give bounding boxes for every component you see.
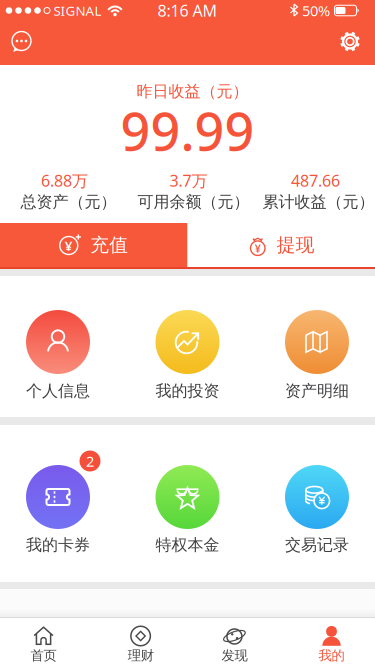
button[interactable]: 首页: [0, 618, 90, 667]
staticText: 个人信息: [26, 381, 90, 401]
button[interactable]: 我的卡券: [0, 425, 116, 582]
staticText: 提现: [277, 233, 315, 256]
button[interactable]: 特权本金: [129, 425, 245, 582]
button[interactable]: ¥: [187, 223, 375, 267]
staticText: 我的: [318, 647, 344, 664]
staticText: 6.88万: [41, 170, 88, 191]
staticText: 487.66: [291, 170, 340, 191]
staticText: ¥: [255, 241, 261, 255]
staticText: 资产明细: [285, 381, 349, 401]
button[interactable]: 资产明细: [259, 276, 375, 417]
button[interactable]: Messages: [11, 31, 32, 52]
staticText: 发现: [221, 647, 247, 664]
staticText: 累计收益（元）: [262, 192, 374, 212]
staticText: 99.99: [120, 96, 254, 165]
button[interactable]: 个人信息: [0, 276, 116, 417]
staticText: 3.7万: [169, 170, 207, 191]
staticText: 交易记录: [285, 535, 349, 555]
staticText: 首页: [30, 647, 56, 664]
button[interactable]: 我的投资: [129, 276, 245, 417]
staticText: 昨日收益（元）: [136, 82, 248, 101]
button[interactable]: 理财: [94, 618, 187, 667]
button[interactable]: 我的: [285, 618, 375, 667]
staticText: 我的投资: [155, 381, 219, 401]
button[interactable]: 交易记录: [259, 425, 375, 582]
staticText: 8:16 AM: [157, 0, 217, 21]
staticText: 总资产（元）: [20, 192, 116, 212]
button[interactable]: ¥: [0, 223, 187, 267]
button[interactable]: 发现: [187, 618, 281, 667]
staticText: 我的卡券: [26, 535, 90, 555]
staticText: 2: [86, 451, 94, 471]
staticText: SIGNAL: [53, 2, 101, 19]
staticText: ¥: [65, 237, 73, 254]
staticText: 理财: [128, 647, 154, 664]
staticText: 充值: [90, 233, 128, 256]
staticText: 特权本金: [155, 535, 219, 555]
staticText: 50%: [302, 1, 330, 20]
staticText: 可用余额（元）: [137, 192, 249, 212]
button[interactable]: Settings: [339, 30, 361, 52]
